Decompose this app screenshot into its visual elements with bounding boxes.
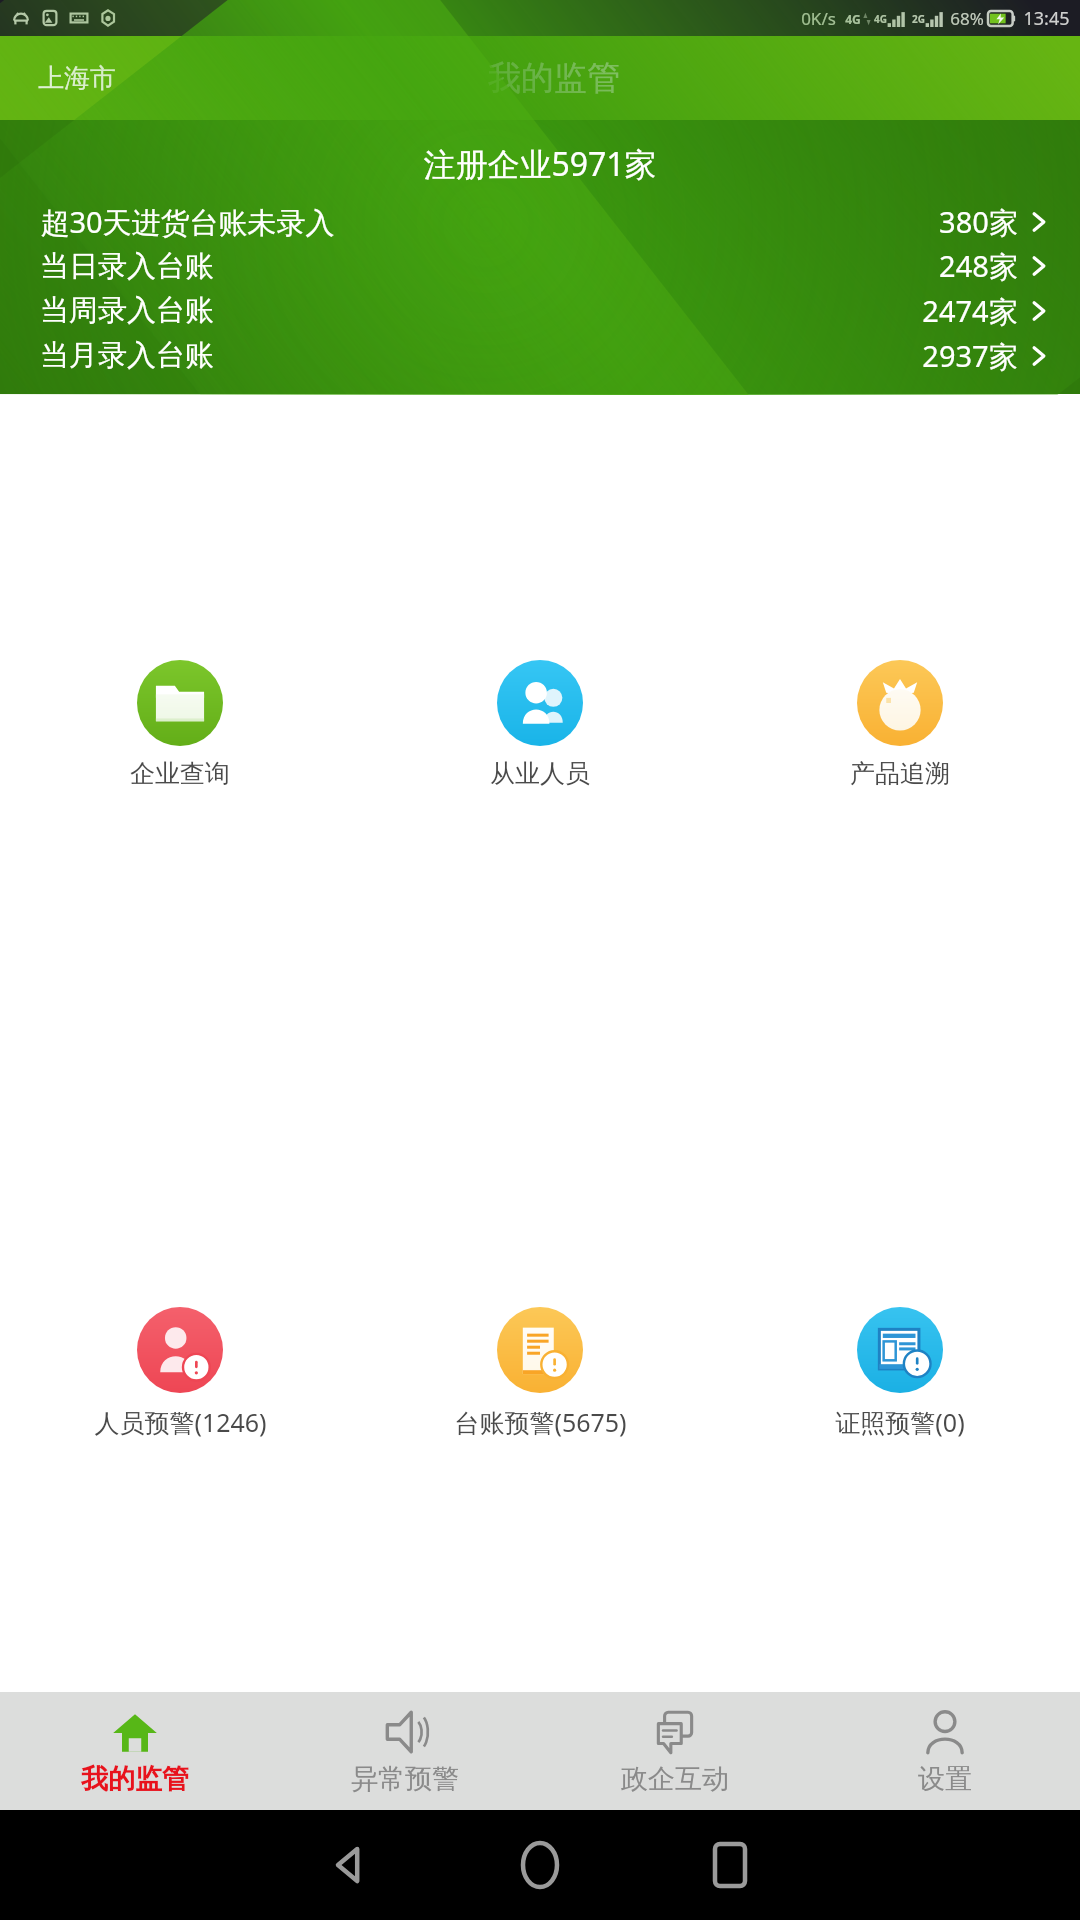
- button[interactable]: 当月录入台账: [0, 333, 1080, 378]
- staticText: 13:45: [1023, 6, 1070, 31]
- staticText: 注册企业5971家: [423, 142, 657, 186]
- staticText: 当周录入台账: [40, 292, 214, 329]
- staticText: 当日录入台账: [40, 248, 214, 285]
- staticText: 台账预警(5675): [454, 1405, 627, 1439]
- staticText: 68%: [950, 7, 984, 30]
- staticText: 从业人员: [490, 758, 590, 789]
- staticText: 超30天进货台账未录入: [40, 202, 335, 242]
- staticText: 我的监管: [81, 1762, 189, 1796]
- button[interactable]: 企业查询: [0, 395, 360, 1043]
- button[interactable]: 人员预警(1246): [0, 1043, 360, 1692]
- staticText: 设置: [918, 1762, 972, 1796]
- staticText: 248家: [939, 246, 1018, 286]
- staticText: 异常预警: [351, 1762, 459, 1796]
- button[interactable]: 产品追溯: [720, 395, 1080, 1043]
- button[interactable]: Back: [255, 1810, 445, 1920]
- button[interactable]: 当周录入台账: [0, 288, 1080, 333]
- staticText: 380家: [939, 202, 1018, 242]
- staticText: 政企互动: [621, 1762, 729, 1796]
- button[interactable]: 设置: [810, 1692, 1080, 1810]
- staticText: 证照预警(0): [835, 1405, 965, 1439]
- staticText: 上海市: [38, 62, 116, 95]
- staticText: 4G: [874, 12, 887, 26]
- staticText: 我的监管: [488, 57, 620, 99]
- staticText: 4G: [845, 11, 861, 27]
- staticText: 企业查询: [130, 758, 230, 789]
- staticText: 2474家: [922, 291, 1018, 331]
- button[interactable]: 证照预警(0): [720, 1043, 1080, 1692]
- button[interactable]: 当日录入台账: [0, 244, 1080, 288]
- button[interactable]: 政企互动: [540, 1692, 810, 1810]
- button[interactable]: 异常预警: [270, 1692, 540, 1810]
- staticText: 2G: [912, 12, 925, 26]
- button[interactable]: Recent apps: [635, 1810, 825, 1920]
- staticText: 当月录入台账: [40, 337, 214, 374]
- button[interactable]: 上海市: [24, 54, 130, 103]
- staticText: 人员预警(1246): [94, 1405, 267, 1439]
- staticText: 2937家: [922, 336, 1018, 376]
- button[interactable]: 超30天进货台账未录入: [0, 200, 1080, 244]
- button[interactable]: Home: [445, 1810, 635, 1920]
- staticText: 产品追溯: [850, 758, 950, 789]
- staticText: 0K/s: [801, 7, 836, 30]
- button[interactable]: 我的监管: [0, 1692, 270, 1810]
- button[interactable]: 从业人员: [360, 395, 720, 1043]
- button[interactable]: 台账预警(5675): [360, 1043, 720, 1692]
